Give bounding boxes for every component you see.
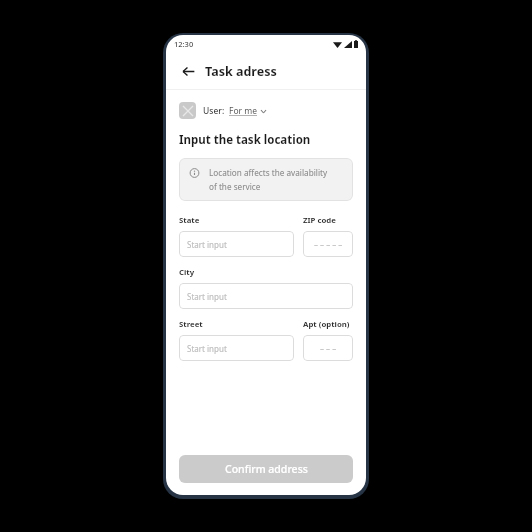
button[interactable]: Confirm address bbox=[179, 455, 353, 483]
staticText: Start input bbox=[187, 239, 227, 250]
button[interactable]: – – – – – bbox=[303, 231, 353, 257]
staticText: – – – bbox=[320, 343, 337, 354]
staticText: Street bbox=[179, 319, 203, 330]
staticText: Task adress bbox=[205, 63, 277, 80]
staticText: Apt (option) bbox=[303, 319, 350, 330]
staticText: Input the task location bbox=[179, 132, 311, 148]
staticText: Start input bbox=[187, 291, 227, 302]
staticText: State bbox=[179, 215, 200, 226]
button[interactable]: Start input bbox=[179, 335, 294, 361]
button[interactable]: For me bbox=[229, 105, 266, 117]
button[interactable]: Start input bbox=[179, 283, 353, 309]
button[interactable]: Start input bbox=[179, 231, 294, 257]
staticText: Confirm address bbox=[225, 462, 308, 476]
staticText: – – – – – bbox=[314, 239, 343, 250]
button[interactable]: User avatar bbox=[179, 102, 196, 119]
button[interactable]: Back bbox=[178, 61, 198, 81]
staticText: For me bbox=[229, 105, 258, 117]
staticText: User: bbox=[203, 105, 225, 117]
staticText: City bbox=[179, 267, 195, 278]
staticText: of the service bbox=[209, 181, 261, 192]
button[interactable]: – – – bbox=[303, 335, 353, 361]
button[interactable]: Location affects the availability bbox=[179, 158, 353, 201]
staticText: 12:30 bbox=[174, 39, 194, 49]
staticText: Location affects the availability bbox=[209, 167, 328, 178]
staticText: Start input bbox=[187, 343, 227, 354]
staticText: ZIP code bbox=[303, 215, 336, 226]
